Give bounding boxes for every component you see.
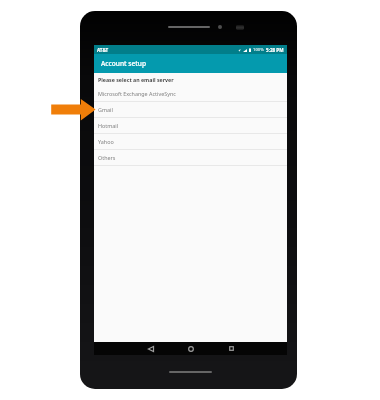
staticText: 100% (253, 47, 264, 53)
staticText: Please select an email server (98, 76, 174, 83)
staticText: Gmail (98, 106, 113, 113)
staticText: Hotmail (98, 122, 119, 129)
staticText: Yahoo (98, 138, 114, 145)
button[interactable]: Microsoft Exchange ActiveSync (94, 86, 287, 101)
button[interactable]: Others (94, 150, 287, 165)
button[interactable]: Yahoo (94, 134, 287, 149)
button[interactable]: Gmail (94, 102, 287, 117)
staticText: Account setup (101, 59, 147, 68)
staticText: Microsoft Exchange ActiveSync (98, 90, 176, 97)
button[interactable]: Hotmail (94, 118, 287, 133)
button[interactable]: Home (171, 342, 211, 355)
staticText: 5:28 PM (266, 47, 284, 53)
staticText: Others (98, 154, 116, 161)
staticText: AT&T (97, 47, 109, 53)
button[interactable]: Back (131, 342, 171, 355)
button[interactable]: Recent apps (211, 342, 251, 355)
